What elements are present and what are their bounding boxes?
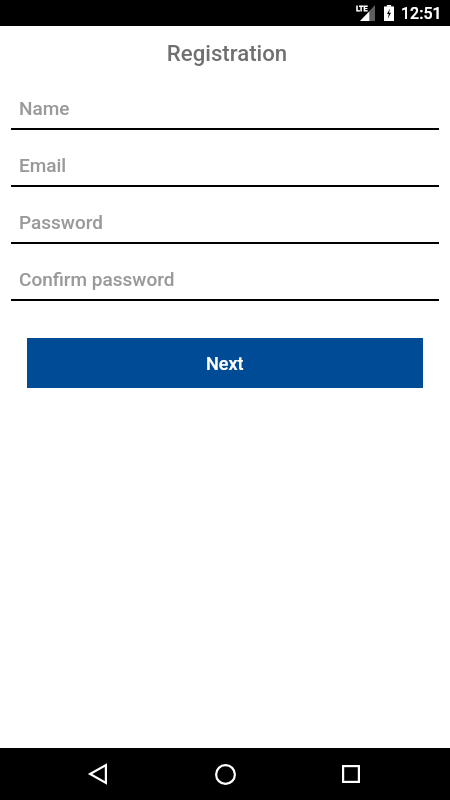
staticText: 12:51 [401, 4, 442, 23]
staticText: Next [206, 353, 244, 374]
button[interactable]: Email [11, 130, 439, 187]
staticText: LTE [356, 4, 368, 12]
button[interactable]: Name [11, 73, 439, 130]
button[interactable]: Back [62, 748, 134, 800]
staticText: Name [19, 97, 70, 119]
staticText: Email [19, 154, 67, 176]
button[interactable]: Password [11, 187, 439, 244]
button[interactable]: Home [189, 748, 261, 800]
button[interactable]: Confirm password [11, 244, 439, 301]
staticText: Password [19, 211, 103, 233]
staticText: Registration [2, 40, 450, 66]
button[interactable]: Recents [315, 748, 387, 800]
button[interactable]: Next [27, 338, 423, 388]
staticText: Confirm password [19, 268, 175, 290]
